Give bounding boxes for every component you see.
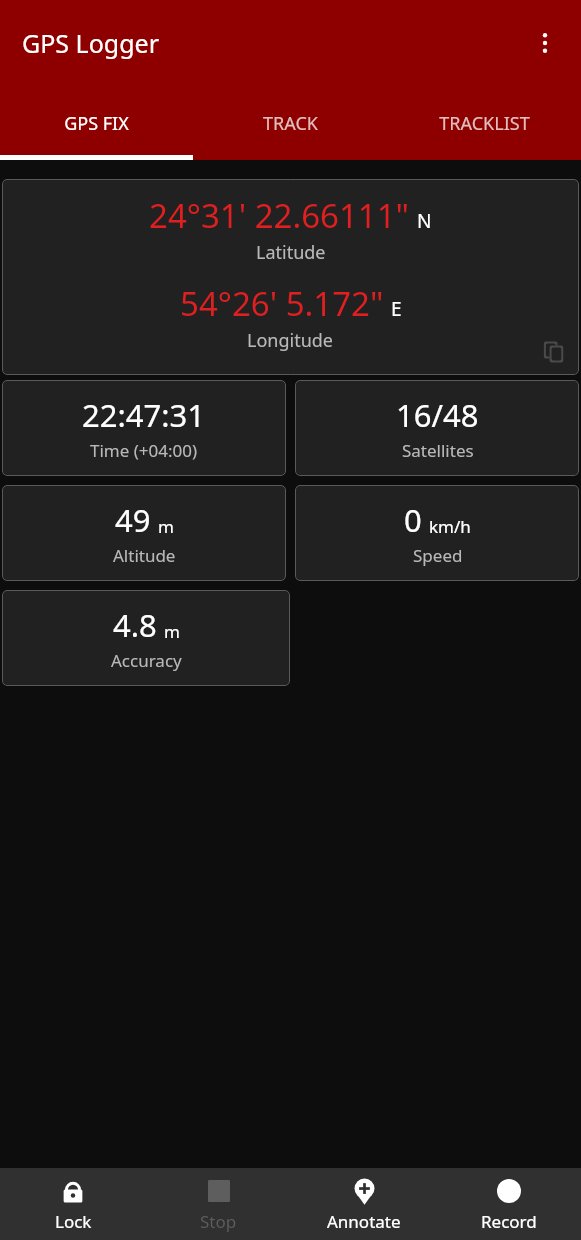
staticText: N <box>417 208 432 234</box>
staticText: TRACK <box>263 111 318 136</box>
staticText: GPS FIX <box>64 111 129 136</box>
button[interactable]: 49 <box>2 485 286 581</box>
staticText: Speed <box>413 544 463 567</box>
staticText: GPS Logger <box>22 26 159 60</box>
button[interactable]: 4.8 <box>2 590 290 686</box>
staticText: 16/48 <box>396 394 479 436</box>
staticText: m <box>164 620 180 643</box>
button[interactable]: Copy coordinates <box>537 335 571 369</box>
button[interactable]: 0 <box>295 485 579 581</box>
button[interactable]: 16/48 <box>295 380 579 476</box>
staticText: E <box>391 296 402 322</box>
button[interactable]: Annotate <box>291 1168 436 1240</box>
staticText: Satellites <box>402 439 474 462</box>
staticText: Altitude <box>113 544 176 567</box>
button[interactable]: More options <box>519 17 571 69</box>
button[interactable]: 22:47:31 <box>2 380 286 476</box>
staticText: 49 <box>115 499 151 541</box>
staticText: 22:47:31 <box>82 394 206 436</box>
staticText: Time (+04:00) <box>90 439 198 462</box>
button[interactable]: Record <box>436 1168 581 1240</box>
staticText: 4.8 <box>113 604 157 646</box>
button[interactable]: GPS FIX <box>0 86 193 160</box>
staticText: m <box>158 515 174 538</box>
staticText: km/h <box>429 515 471 538</box>
staticText: TRACKLIST <box>439 111 530 136</box>
staticText: 24°31' 22.66111" <box>149 193 410 238</box>
staticText: Annotate <box>327 1210 401 1233</box>
staticText: Lock <box>55 1210 92 1233</box>
button[interactable]: TRACK <box>193 86 387 160</box>
button[interactable]: Lock <box>0 1168 146 1240</box>
button[interactable]: 24°31' 22.66111" <box>2 179 579 375</box>
staticText: Stop <box>200 1210 237 1233</box>
staticText: 54°26' 5.172" <box>180 281 384 326</box>
staticText: 0 <box>404 499 422 541</box>
staticText: Accuracy <box>111 649 182 672</box>
button[interactable]: TRACKLIST <box>387 86 581 160</box>
staticText: Longitude <box>247 328 334 353</box>
staticText: Latitude <box>256 240 326 265</box>
staticText: Record <box>481 1210 537 1233</box>
button[interactable]: Stop <box>146 1168 291 1240</box>
